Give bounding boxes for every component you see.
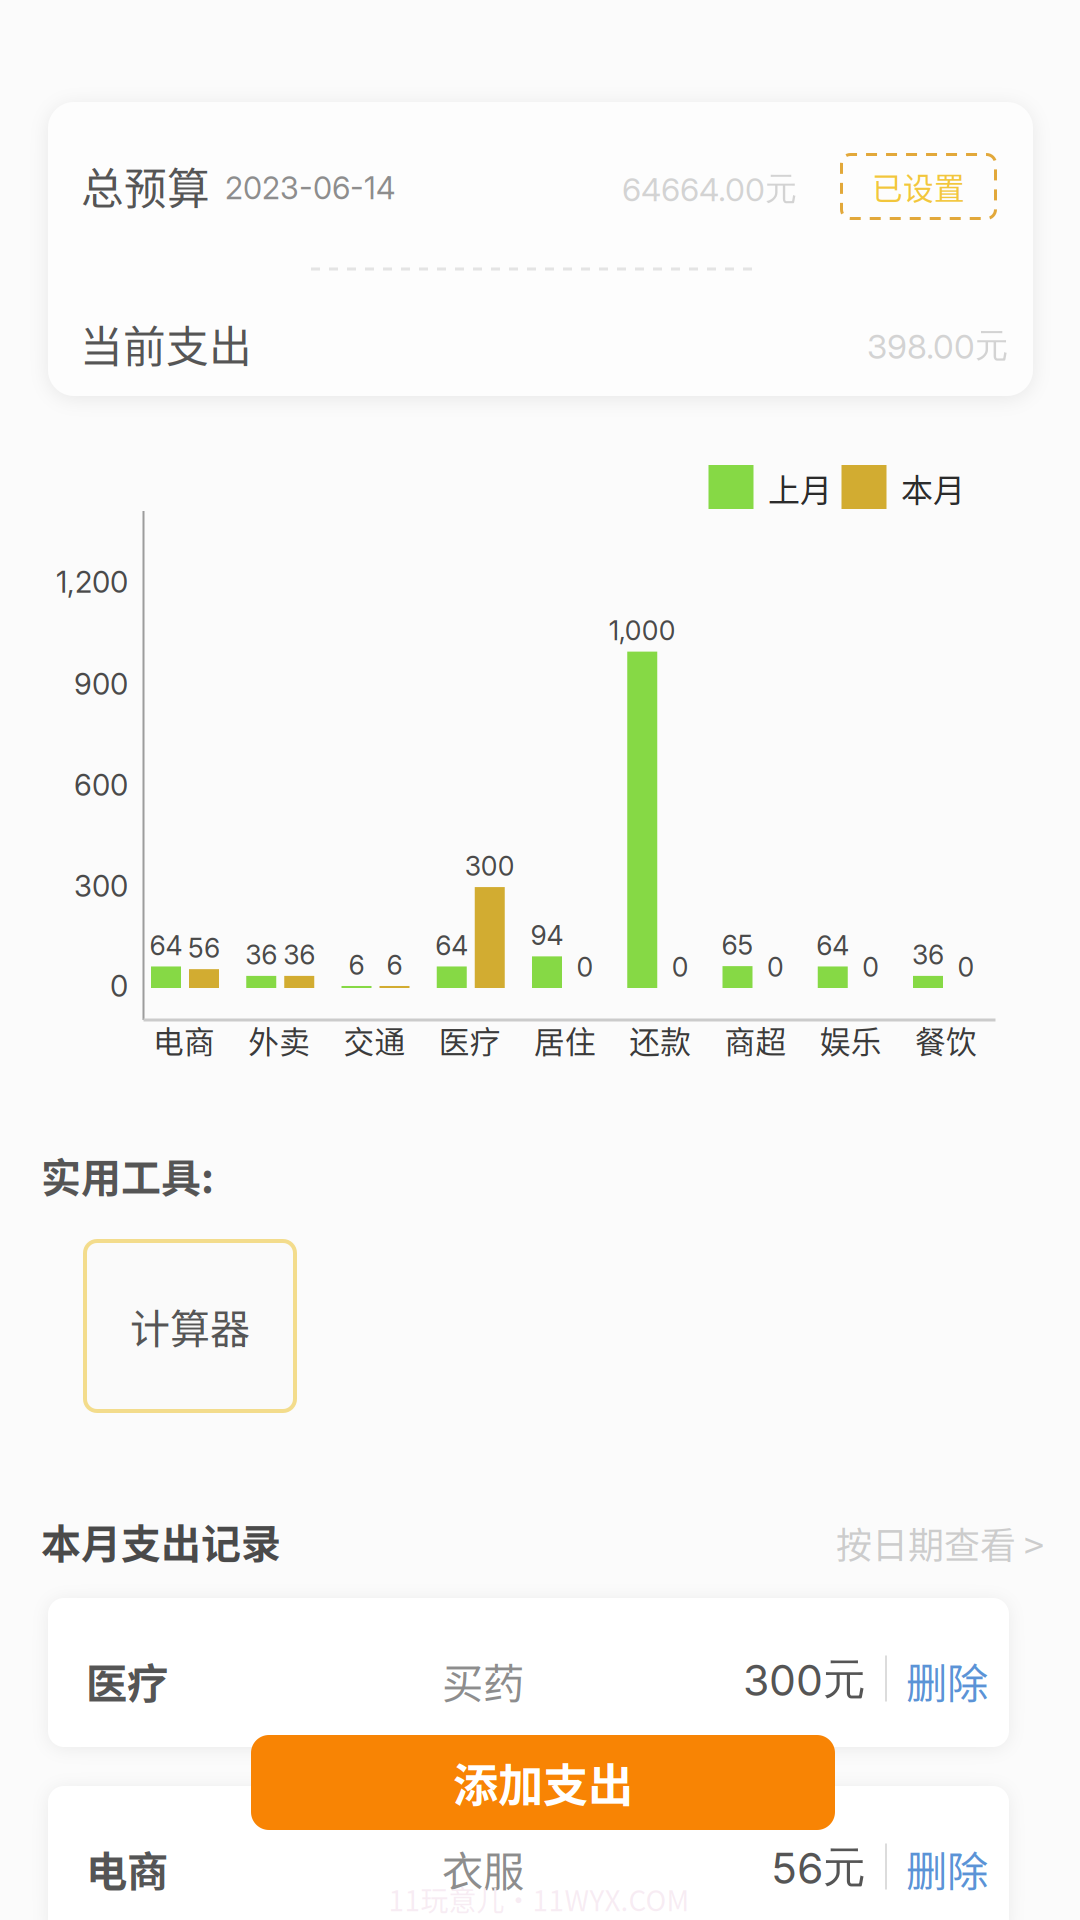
staticText: 交通 [343,1018,405,1062]
staticText: 当前支出 [80,313,252,375]
button[interactable]: 按日期查看 > [724,1511,1044,1575]
staticText: 0 [672,951,689,983]
staticText: 36 [912,939,944,971]
staticText: 56 [188,932,220,964]
staticText: 0 [576,951,593,983]
staticText: 还款 [629,1018,691,1062]
button[interactable]: 添加支出 [251,1735,835,1830]
staticText: 6 [348,949,364,981]
staticText: 1,200 [56,564,128,600]
staticText: 医疗 [439,1018,501,1062]
staticText: 300元 [743,1653,866,1706]
staticText: 按日期查看 > [836,1517,1044,1569]
staticText: 商超 [724,1018,786,1062]
staticText: 6 [386,949,402,981]
staticText: 36 [283,939,315,971]
staticText: 300 [74,868,128,904]
staticText: 64 [149,929,182,962]
staticText: 删除 [906,1839,988,1898]
staticText: 买药 [442,1651,524,1710]
staticText: 电商 [153,1018,215,1062]
staticText: 0 [110,968,128,1004]
staticText: 64664.00元 [622,169,797,209]
staticText: 2023-06-14 [225,169,395,206]
staticText: 64 [435,929,468,962]
staticText: 衣服 [442,1839,524,1898]
staticText: 添加支出 [453,1750,633,1815]
staticText: 本月 [901,465,965,511]
staticText: 餐饮 [915,1018,977,1062]
staticText: 删除 [906,1651,988,1710]
staticText: 600 [74,767,128,803]
staticText: 居住 [534,1018,596,1062]
staticText: 0 [767,951,784,983]
staticText: 0 [957,951,974,983]
button[interactable]: 删除 [892,1648,1002,1712]
staticText: 398.00元 [867,325,1008,367]
staticText: 56元 [771,1841,866,1894]
staticText: 总预算 [81,155,210,217]
staticText: 65 [721,929,753,961]
staticText: 已设置 [872,164,965,209]
staticText: 本月支出记录 [41,1512,281,1570]
staticText: 实用工具: [41,1146,214,1204]
staticText: 36 [245,939,277,971]
button[interactable]: 删除 [892,1836,1002,1900]
staticText: 1,000 [609,614,676,647]
staticText: 电商 [86,1839,168,1898]
staticText: 0 [862,951,879,983]
staticText: 娱乐 [820,1018,882,1062]
staticText: 64 [816,929,849,962]
staticText: 94 [530,919,563,951]
staticText: 300 [465,850,515,882]
staticText: 外卖 [248,1018,310,1062]
staticText: 上月 [768,465,832,511]
staticText: 11玩意儿·11WYX.COM [388,1879,689,1919]
button[interactable]: 已设置 [840,153,997,220]
button[interactable]: 计算器 [83,1239,297,1413]
staticText: 医疗 [86,1651,168,1710]
staticText: 900 [74,666,128,702]
staticText: 计算器 [130,1297,250,1355]
